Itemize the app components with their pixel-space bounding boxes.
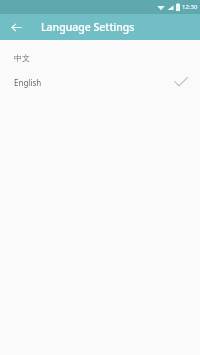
button[interactable]: Back: [7, 18, 25, 36]
staticText: 中文: [14, 53, 30, 63]
staticText: 12:30: [182, 3, 198, 11]
staticText: Language Settings: [41, 20, 135, 34]
staticText: English: [14, 77, 42, 88]
button[interactable]: 中文: [0, 46, 200, 70]
button[interactable]: English: [0, 70, 200, 94]
